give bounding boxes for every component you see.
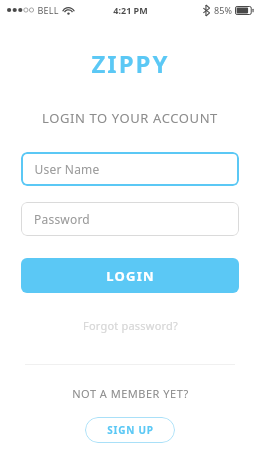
staticText: ZIPPY [91, 47, 170, 80]
button[interactable]: Password [21, 202, 239, 236]
staticText: LOGIN TO YOUR ACCOUNT [42, 109, 218, 127]
staticText: Forgot password? [83, 318, 178, 333]
staticText: Password [34, 211, 90, 227]
staticText: NOT A MEMBER YET? [72, 386, 189, 401]
button[interactable]: LOGIN [21, 258, 239, 293]
staticText: SIGN UP [107, 423, 154, 437]
button[interactable]: User Name [21, 152, 239, 186]
staticText: LOGIN [106, 267, 155, 285]
staticText: BELL [37, 4, 59, 16]
button[interactable]: Forgot password? [73, 314, 188, 337]
staticText: 4:21 PM [113, 4, 148, 16]
staticText: 85% [214, 4, 232, 16]
staticText: User Name [34, 161, 100, 177]
button[interactable]: SIGN UP [85, 417, 175, 443]
